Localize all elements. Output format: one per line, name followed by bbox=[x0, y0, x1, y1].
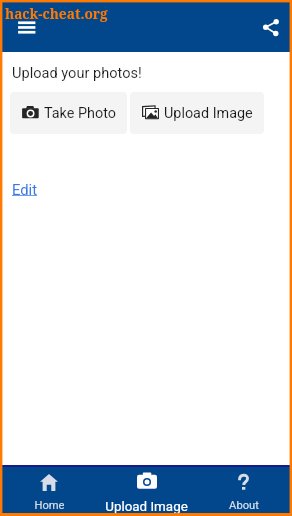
staticText: About bbox=[229, 499, 259, 512]
staticText: hack-cheat.org bbox=[5, 4, 108, 23]
staticText: Take Photo bbox=[44, 105, 116, 122]
staticText: Upload Image bbox=[164, 105, 253, 122]
staticText: Upload your photos! bbox=[12, 64, 142, 81]
staticText: Edit bbox=[12, 181, 38, 198]
other: Upload Image bbox=[138, 474, 156, 491]
button[interactable]: Upload Image bbox=[98, 467, 195, 516]
button[interactable]: Edit bbox=[12, 181, 38, 198]
other: About bbox=[235, 474, 253, 491]
other: Home bbox=[40, 474, 58, 491]
button[interactable]: Home bbox=[0, 467, 98, 516]
button[interactable]: Upload Image bbox=[130, 92, 264, 134]
staticText: Upload Image bbox=[105, 499, 188, 515]
button[interactable]: Share bbox=[254, 10, 284, 40]
button[interactable]: Menu bbox=[13, 12, 41, 40]
button[interactable]: Take Photo bbox=[10, 92, 127, 134]
staticText: Home bbox=[34, 499, 65, 512]
button[interactable]: About bbox=[195, 467, 292, 516]
